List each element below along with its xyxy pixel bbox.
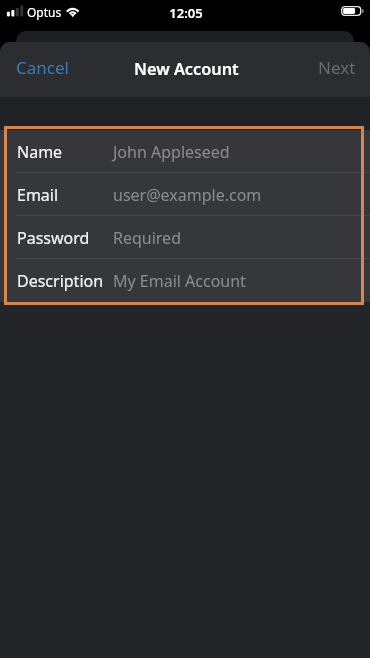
- staticText: Description: [17, 270, 104, 292]
- staticText: My Email Account: [113, 270, 246, 292]
- staticText: Cancel: [16, 56, 69, 79]
- button[interactable]: Email: [0, 173, 370, 216]
- staticText: 12:05: [169, 4, 203, 22]
- staticText: Password: [17, 227, 90, 249]
- staticText: John Appleseed: [113, 141, 230, 163]
- button[interactable]: Description: [0, 259, 370, 302]
- button[interactable]: Password: [0, 216, 370, 259]
- staticText: New Account: [134, 58, 239, 80]
- button[interactable]: Cancel: [0, 46, 85, 89]
- button[interactable]: Name: [0, 130, 370, 173]
- staticText: Optus: [27, 4, 62, 20]
- other: Battery: [341, 6, 365, 16]
- staticText: Next: [318, 56, 356, 79]
- staticText: Name: [17, 141, 63, 163]
- staticText: user@example.com: [113, 184, 262, 206]
- button[interactable]: Next: [302, 46, 370, 89]
- staticText: Required: [113, 227, 181, 249]
- staticText: Email: [17, 184, 59, 206]
